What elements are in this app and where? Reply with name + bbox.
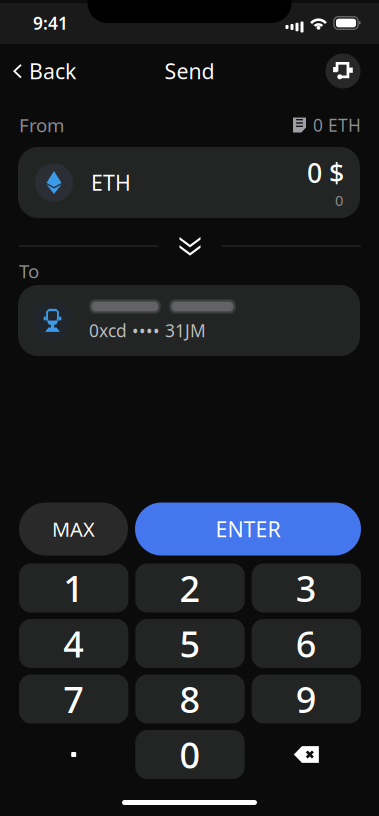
- staticText: 0 $: [307, 155, 344, 190]
- button[interactable]: Back: [0, 44, 88, 98]
- button[interactable]: 6: [252, 619, 361, 668]
- staticText: 5: [179, 620, 200, 667]
- button[interactable]: 2: [135, 563, 245, 612]
- staticText: ENTER: [215, 515, 280, 543]
- staticText: 0 ETH: [313, 113, 361, 136]
- staticText: 0: [335, 190, 343, 210]
- staticText: 4: [63, 620, 84, 667]
- button[interactable]: 9: [252, 674, 361, 723]
- staticText: ETH: [91, 168, 131, 197]
- staticText: 3: [296, 564, 317, 612]
- staticText: 0xcd •••• 31JM: [89, 319, 206, 342]
- staticText: 0: [179, 731, 200, 778]
- button[interactable]: Scan QR code: [320, 44, 366, 98]
- button[interactable]: 7: [19, 674, 128, 723]
- button[interactable]: Delete: [252, 730, 361, 779]
- staticText: 9: [296, 675, 317, 723]
- staticText: 8: [179, 675, 200, 723]
- staticText: Send: [164, 57, 214, 85]
- button[interactable]: Swap direction: [158, 231, 221, 261]
- staticText: 7: [63, 675, 84, 723]
- button[interactable]: Decimal point: [19, 730, 128, 779]
- button[interactable]: 5: [135, 619, 245, 668]
- button[interactable]: ETH: [18, 147, 360, 218]
- staticText: From: [19, 113, 64, 137]
- staticText: Back: [29, 57, 76, 85]
- staticText: 2: [179, 564, 200, 612]
- button[interactable]: 0: [135, 730, 245, 779]
- staticText: 9:41: [33, 11, 68, 34]
- staticText: 6: [296, 620, 317, 667]
- button[interactable]: 4: [19, 619, 128, 668]
- button[interactable]: ENTER: [135, 502, 361, 555]
- button[interactable]: 0xcd •••• 31JM: [18, 285, 360, 356]
- button[interactable]: MAX: [19, 502, 128, 555]
- staticText: MAX: [52, 516, 95, 542]
- staticText: To: [19, 259, 39, 283]
- button[interactable]: 8: [135, 674, 245, 723]
- staticText: 1: [63, 564, 84, 612]
- button[interactable]: 1: [19, 563, 128, 612]
- button[interactable]: 3: [252, 563, 361, 612]
